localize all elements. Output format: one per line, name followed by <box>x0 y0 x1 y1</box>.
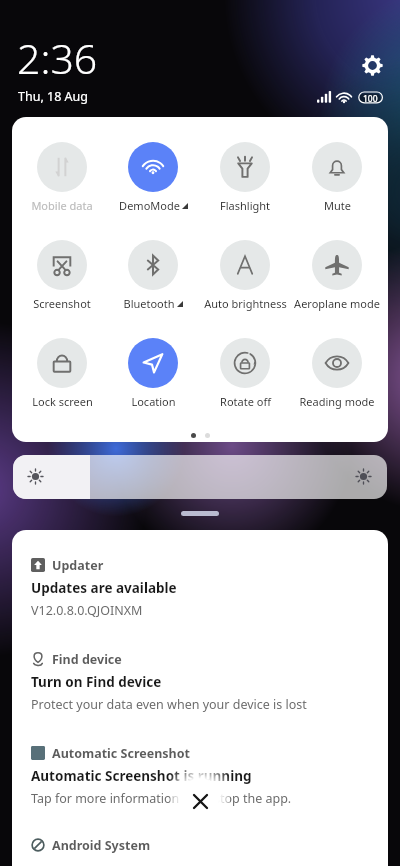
button[interactable]: Auto brightness <box>199 240 291 311</box>
button[interactable]: Automatic Screenshot <box>31 743 381 809</box>
staticText: Bluetooth <box>123 296 175 311</box>
button[interactable]: Reading mode <box>291 338 383 409</box>
button[interactable]: Aeroplane mode <box>291 240 383 311</box>
button[interactable]: Rotate off <box>199 338 291 409</box>
staticText: Automatic Screenshot <box>52 745 190 762</box>
staticText: 2:36 <box>17 30 98 86</box>
button[interactable]: Flashlight <box>199 142 291 213</box>
staticText: Lock screen <box>32 394 93 409</box>
staticText: Mute <box>324 198 351 213</box>
button[interactable]: Mute <box>291 142 383 213</box>
button[interactable]: Brightness <box>13 455 387 499</box>
button[interactable]: Lock screen <box>16 338 108 409</box>
staticText: Aeroplane mode <box>294 296 380 311</box>
staticText: Rotate off <box>220 394 271 409</box>
staticText: V12.0.8.0.QJOINXM <box>31 602 143 619</box>
button[interactable]: Close <box>182 783 218 819</box>
staticText: 100 <box>363 93 378 105</box>
staticText: Protect your data even when your device … <box>31 696 307 713</box>
staticText: Updater <box>52 557 104 574</box>
staticText: Turn on Find device <box>31 673 162 691</box>
button[interactable]: DemoMode <box>107 142 199 213</box>
button[interactable]: Android System <box>31 835 381 855</box>
staticText: Updates are available <box>31 579 177 597</box>
staticText: Screenshot <box>33 296 91 311</box>
button[interactable]: Updater <box>31 555 381 621</box>
button[interactable]: Screenshot <box>16 240 108 311</box>
staticText: Android System <box>52 837 151 854</box>
staticText: Automatic Screenshot is running <box>31 767 252 785</box>
staticText: Location <box>131 394 176 409</box>
staticText: Tap for more information or to stop the … <box>31 790 292 807</box>
staticText: Thu, 18 Aug <box>18 88 88 105</box>
staticText: Find device <box>52 651 122 668</box>
button[interactable]: Find device <box>31 649 381 715</box>
button[interactable]: Settings <box>360 53 385 78</box>
staticText: Reading mode <box>299 394 375 409</box>
staticText: DemoMode <box>119 198 180 213</box>
button[interactable]: Location <box>107 338 199 409</box>
button[interactable]: Mobile data <box>16 142 108 213</box>
staticText: Auto brightness <box>204 296 287 311</box>
button[interactable]: Bluetooth <box>107 240 199 311</box>
staticText: Mobile data <box>31 198 93 213</box>
staticText: Flashlight <box>220 198 270 213</box>
